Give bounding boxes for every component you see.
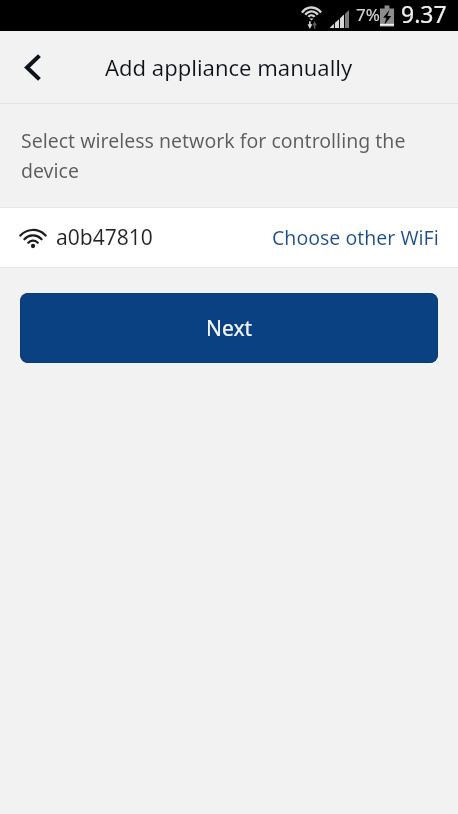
- staticText: Select wireless network for controlling …: [21, 127, 418, 183]
- staticText: Choose other WiFi: [272, 224, 439, 251]
- staticText: 9.37: [401, 0, 447, 29]
- button[interactable]: a0b47810: [0, 208, 458, 267]
- staticText: Next: [206, 314, 253, 343]
- button[interactable]: Next: [20, 293, 438, 363]
- button[interactable]: Choose other WiFi: [272, 208, 439, 267]
- staticText: a0b47810: [56, 223, 153, 252]
- staticText: 7%: [356, 3, 380, 26]
- button[interactable]: Back: [0, 31, 64, 103]
- staticText: Add appliance manually: [105, 52, 353, 82]
